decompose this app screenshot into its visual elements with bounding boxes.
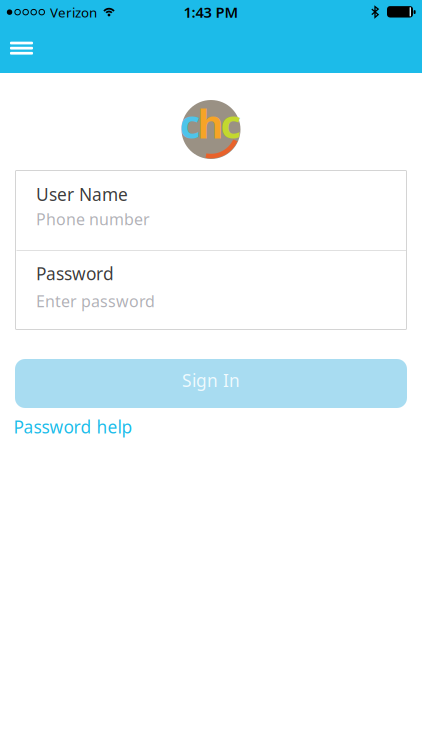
button[interactable]: Sign In: [15, 359, 407, 408]
button[interactable]: User Name, Phone number: [16, 171, 405, 250]
staticText: Password: [36, 262, 114, 285]
button[interactable]: Password, Enter password: [16, 251, 405, 329]
staticText: Enter password: [36, 290, 155, 311]
staticText: Sign In: [182, 369, 240, 392]
button[interactable]: Menu: [6, 38, 37, 59]
staticText: c: [179, 96, 200, 149]
staticText: User Name: [36, 183, 128, 206]
staticText: c: [220, 96, 241, 149]
staticText: Password help: [13, 415, 132, 438]
button[interactable]: Password help: [13, 415, 132, 438]
staticText: Verizon: [50, 3, 97, 21]
staticText: 1:43 PM: [183, 2, 238, 22]
staticText: h: [197, 96, 223, 149]
staticText: Phone number: [36, 208, 150, 229]
